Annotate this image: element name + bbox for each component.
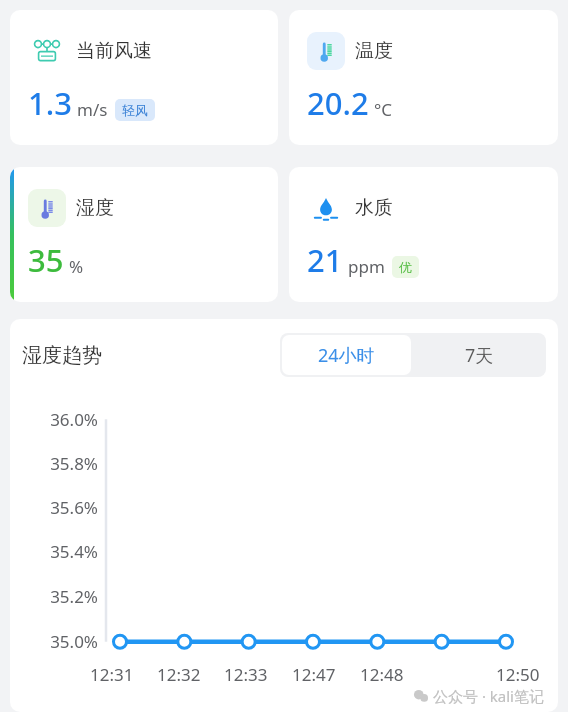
staticText: 公众号 · kali笔记 — [433, 686, 544, 706]
staticText: 35.2% — [50, 585, 98, 608]
staticText: 1.3 — [28, 82, 72, 124]
staticText: 湿度 — [76, 196, 114, 220]
button[interactable]: 7天 — [413, 333, 546, 377]
staticText: 12:33 — [224, 663, 268, 686]
staticText: 24小时 — [318, 343, 375, 368]
staticText: 12:32 — [157, 663, 201, 686]
button[interactable]: 24小时 — [282, 335, 411, 375]
staticText: 35.0% — [50, 630, 98, 653]
staticText: °C — [374, 98, 393, 121]
staticText: 12:48 — [360, 663, 404, 686]
staticText: 温度 — [355, 39, 393, 63]
button[interactable]: 温度 — [289, 10, 558, 145]
staticText: 35.8% — [50, 452, 98, 475]
staticText: 35.6% — [50, 496, 98, 519]
staticText: 湿度趋势 — [22, 343, 102, 368]
button[interactable]: 水质 — [289, 167, 558, 302]
staticText: 优 — [399, 259, 412, 275]
staticText: 35 — [28, 239, 64, 281]
staticText: 12:50 — [496, 663, 540, 686]
button[interactable]: 湿度 — [10, 167, 278, 302]
staticText: % — [69, 255, 84, 278]
staticText: 12:47 — [292, 663, 336, 686]
staticText: 12:31 — [90, 663, 134, 686]
button[interactable]: 当前风速 — [10, 10, 278, 145]
staticText: m/s — [77, 98, 108, 121]
staticText: 20.2 — [307, 82, 369, 124]
staticText: 36.0% — [50, 408, 98, 431]
staticText: ppm — [348, 255, 385, 278]
staticText: 水质 — [355, 196, 393, 220]
staticText: 35.4% — [50, 540, 98, 563]
staticText: 7天 — [465, 343, 494, 368]
staticText: 轻风 — [122, 102, 148, 118]
staticText: 当前风速 — [76, 39, 152, 63]
staticText: 21 — [307, 239, 343, 281]
